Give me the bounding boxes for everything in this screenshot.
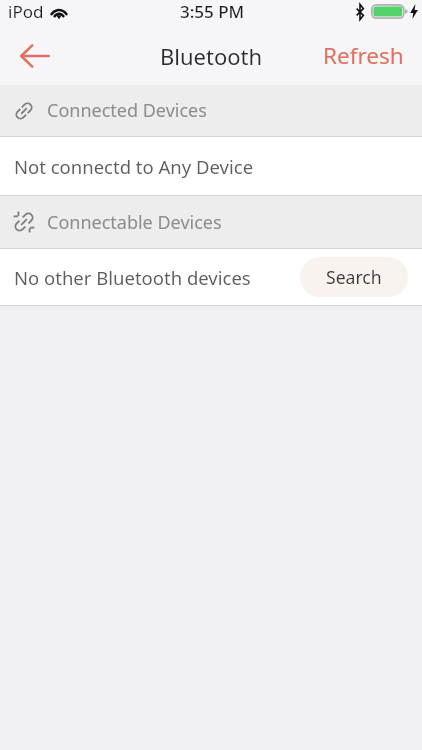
button[interactable]: Connected Devices [0,85,422,136]
staticText: Bluetooth [160,41,263,71]
button[interactable]: Search [300,257,408,297]
staticText: No other Bluetooth devices [14,265,251,290]
staticText: Connected Devices [47,98,207,123]
staticText: 3:55 PM [180,0,245,23]
button[interactable]: Refresh [317,32,410,79]
button[interactable]: No other Bluetooth devices [0,249,422,305]
staticText: Connectable Devices [47,210,222,235]
staticText: Not connectd to Any Device [14,154,254,179]
button[interactable]: Connectable Devices [0,196,422,248]
staticText: iPod [8,0,44,23]
staticText: Refresh [323,40,404,71]
button[interactable]: Not connectd to Any Device [0,137,422,195]
button[interactable]: Back [6,32,64,80]
staticText: Search [326,265,382,289]
